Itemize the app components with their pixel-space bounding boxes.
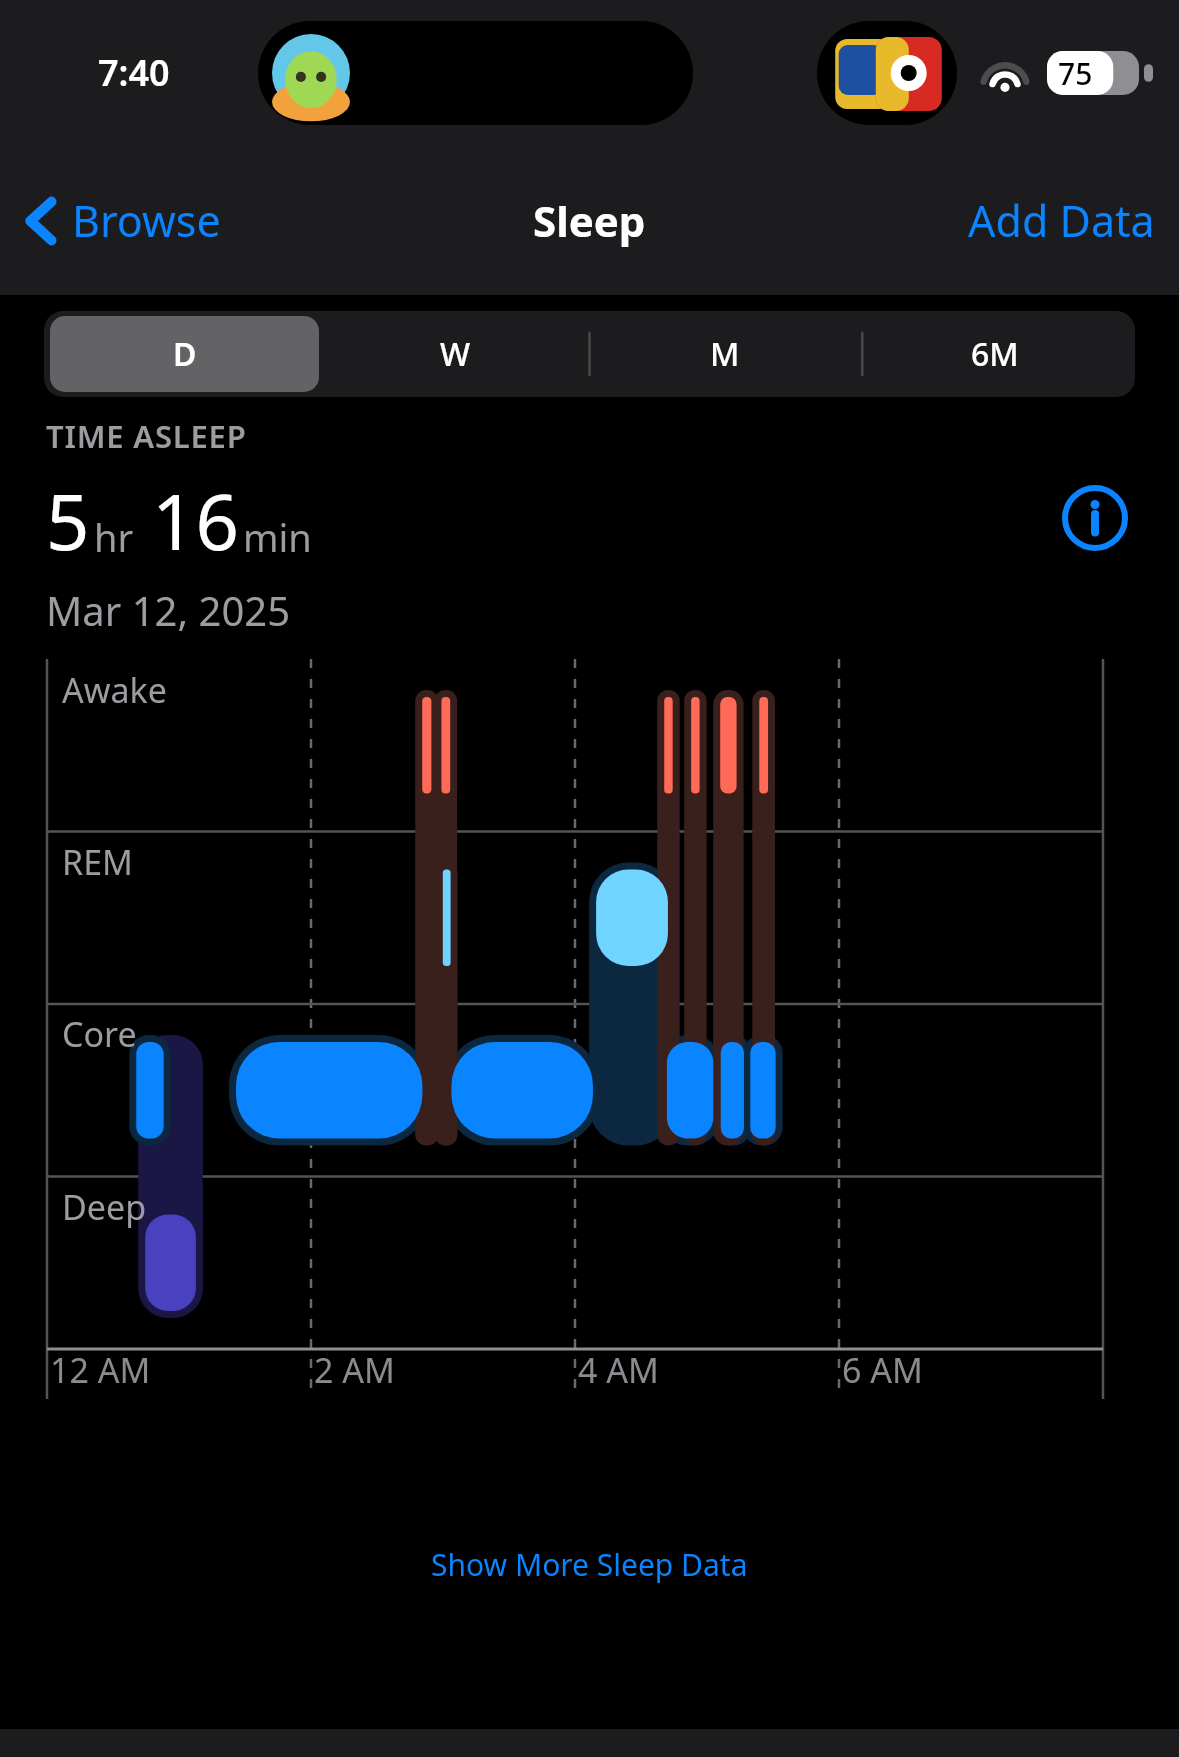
staticText: 6 AM (842, 1347, 923, 1393)
staticText: 75 (1058, 53, 1093, 94)
staticText: Deep (62, 1184, 147, 1230)
button[interactable]: Add Data (944, 177, 1179, 264)
staticText: M (710, 332, 740, 376)
staticText: W (440, 332, 471, 376)
staticText: hr (94, 511, 134, 563)
button[interactable]: Show More Sleep Data (0, 1528, 1179, 1601)
staticText: Add Data (968, 191, 1155, 250)
staticText: TIME ASLEEP (46, 415, 247, 457)
staticText: 6M (971, 332, 1019, 376)
staticText: 5 (46, 469, 90, 573)
button[interactable]: W (321, 316, 589, 392)
staticText: 12 AM (50, 1347, 151, 1393)
staticText: 7:40 (98, 48, 170, 97)
button[interactable]: M (591, 316, 859, 392)
staticText: 4 AM (578, 1347, 659, 1393)
staticText: Sleep (533, 192, 646, 249)
staticText: Core (62, 1011, 137, 1057)
button[interactable]: Browse (0, 177, 237, 264)
staticText: Show More Sleep Data (431, 1544, 748, 1585)
staticText: min (243, 511, 312, 563)
staticText: 16 (152, 469, 239, 573)
staticText: D (173, 332, 197, 376)
staticText: REM (62, 839, 133, 885)
button[interactable]: D (50, 316, 319, 392)
staticText: Browse (72, 191, 221, 250)
button[interactable]: About Time Asleep (1057, 480, 1133, 556)
button[interactable]: 6M (861, 316, 1129, 392)
staticText: Mar 12, 2025 (46, 583, 291, 637)
staticText: Awake (62, 667, 167, 713)
staticText: 2 AM (314, 1347, 395, 1393)
